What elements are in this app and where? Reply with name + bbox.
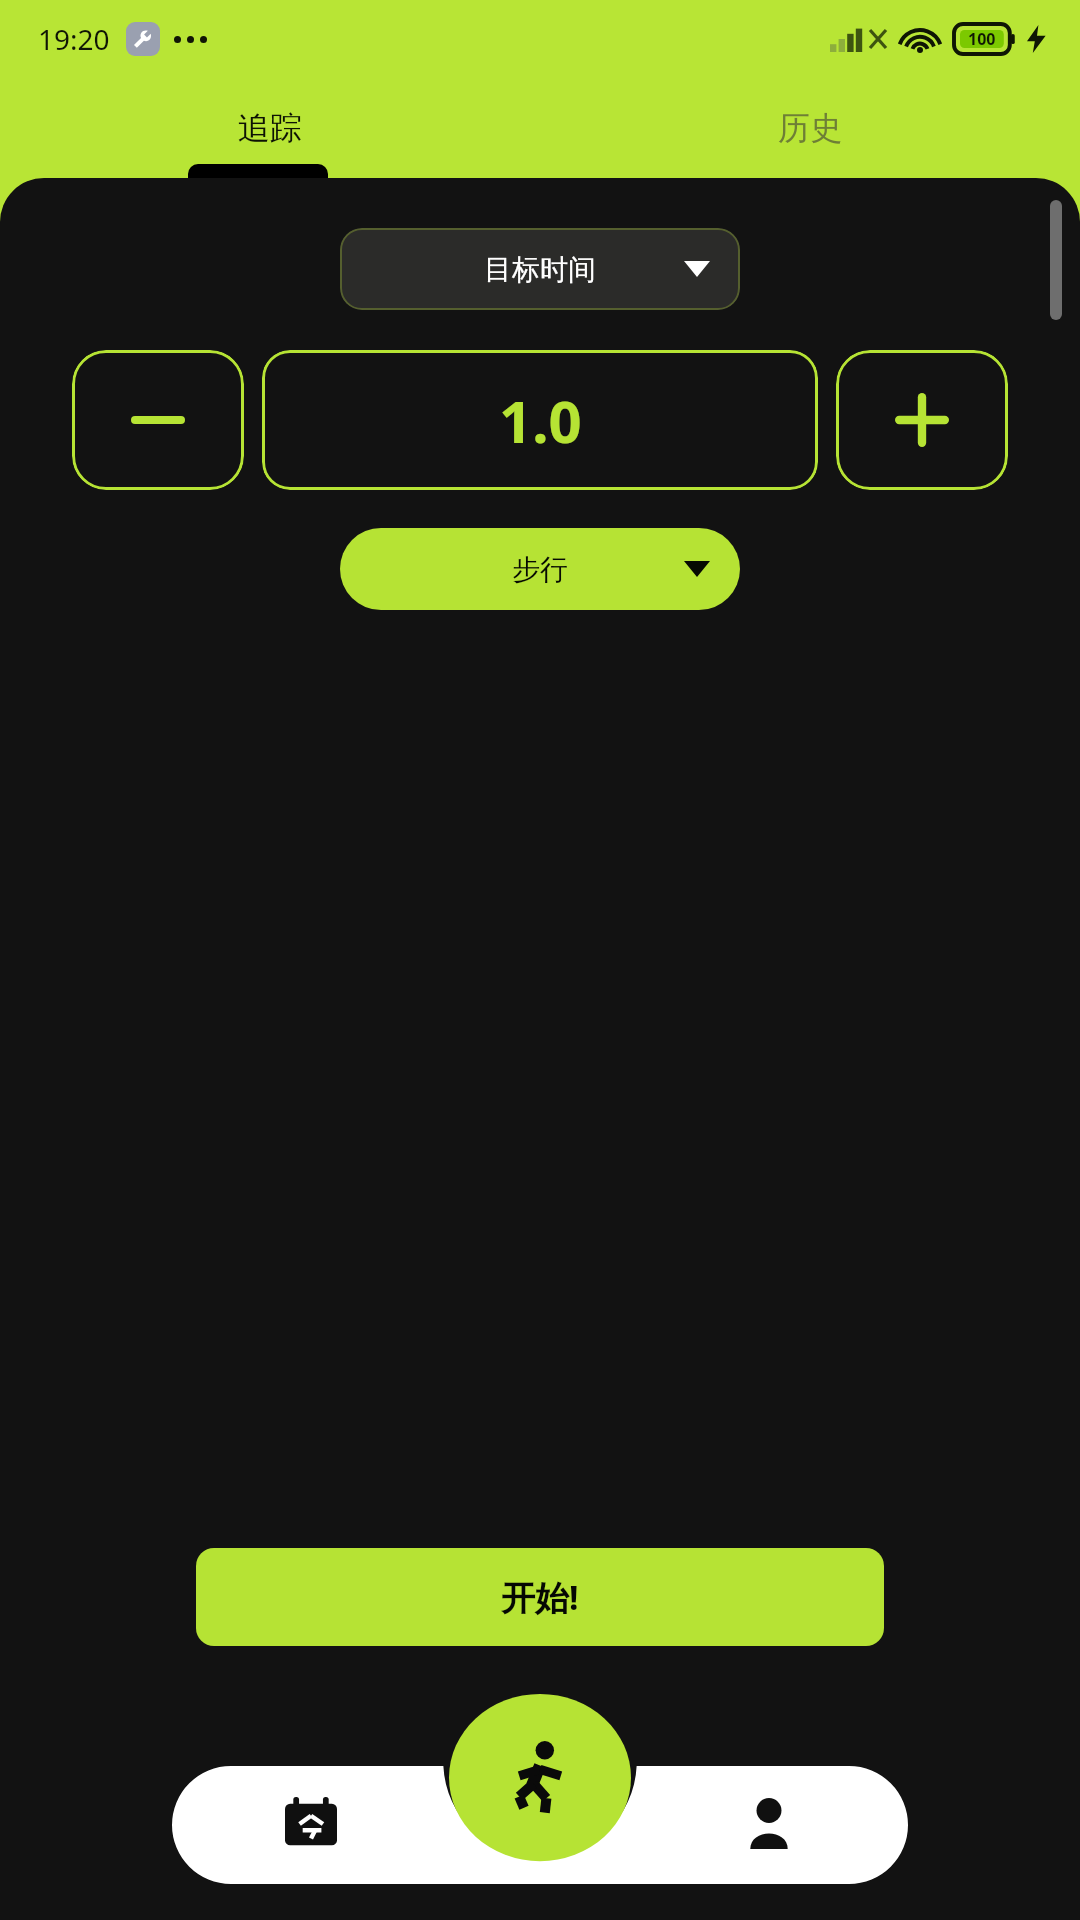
button[interactable]: Start run [449, 1694, 631, 1884]
staticText: 19:20 [38, 20, 110, 58]
button[interactable]: 目标时间 [340, 228, 740, 310]
button[interactable]: Today [268, 1780, 354, 1866]
staticText: 100 [968, 28, 996, 50]
staticText: 步行 [512, 552, 568, 587]
button[interactable]: 历史 [540, 78, 1080, 178]
staticText: 追踪 [238, 108, 302, 148]
button[interactable]: 步行 [340, 528, 740, 610]
staticText: 1.0 [499, 381, 582, 460]
staticText: 历史 [778, 108, 842, 148]
button[interactable]: Profile [726, 1780, 812, 1866]
staticText: 开始! [501, 1574, 579, 1620]
button[interactable]: 1.0 [262, 350, 818, 490]
button[interactable]: Decrease [72, 350, 244, 490]
button[interactable]: 开始! [196, 1548, 884, 1646]
staticText: 目标时间 [484, 252, 596, 287]
button[interactable]: 追踪 [0, 78, 540, 178]
button[interactable]: Increase [836, 350, 1008, 490]
